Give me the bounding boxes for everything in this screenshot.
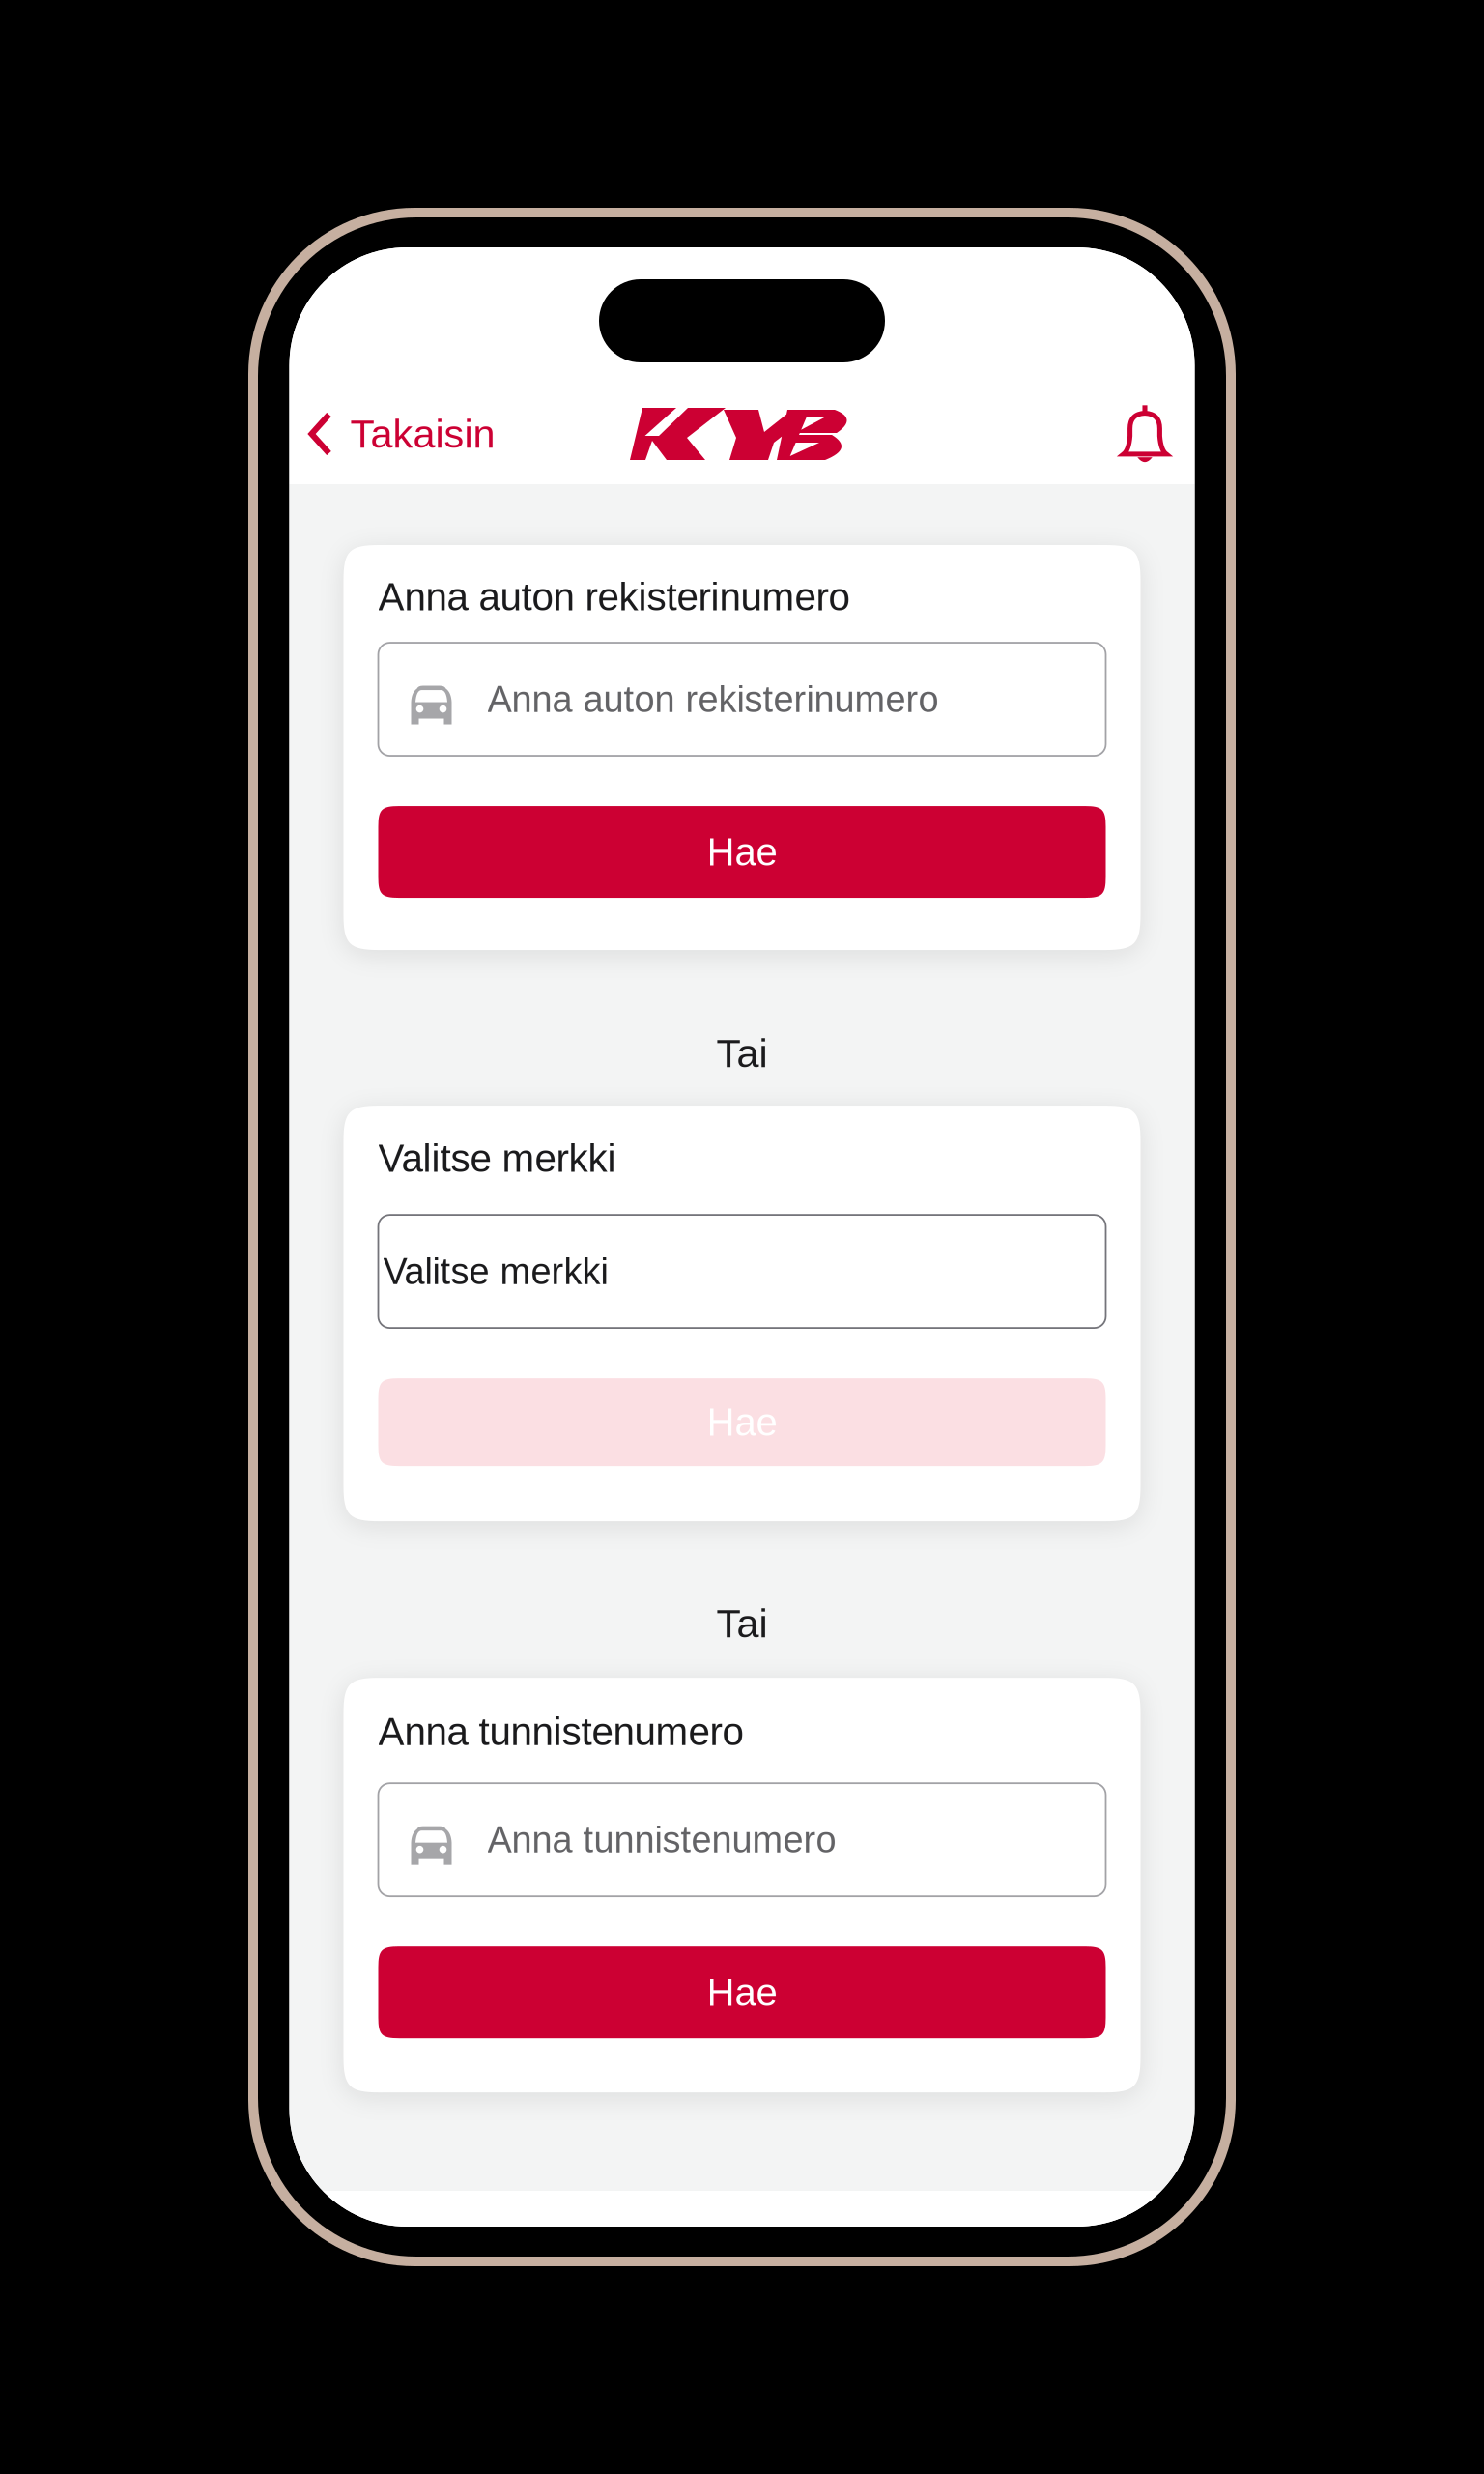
button[interactable]: Ilmoitukset: [1095, 388, 1195, 480]
staticText: Hae: [707, 1971, 777, 2014]
staticText: Anna tunnistenumero: [487, 1819, 836, 1860]
button[interactable]: Hae: [378, 806, 1106, 898]
staticText: Takaisin: [350, 412, 495, 456]
staticText: Anna auton rekisterinumero: [487, 679, 939, 720]
staticText: Tai: [716, 1031, 768, 1076]
staticText: Valitse merkki: [383, 1251, 608, 1292]
staticText: Anna tunnistenumero: [378, 1710, 743, 1753]
staticText: Hae: [707, 830, 777, 874]
staticText: Hae: [707, 1401, 777, 1444]
staticText: Anna auton rekisterinumero: [378, 575, 850, 619]
staticText: Valitse merkki: [378, 1137, 616, 1180]
button[interactable]: Takaisin: [289, 392, 509, 476]
button[interactable]: Hae: [378, 1947, 1106, 2038]
button[interactable]: Hae: [378, 1378, 1106, 1466]
staticText: Tai: [716, 1601, 768, 1646]
